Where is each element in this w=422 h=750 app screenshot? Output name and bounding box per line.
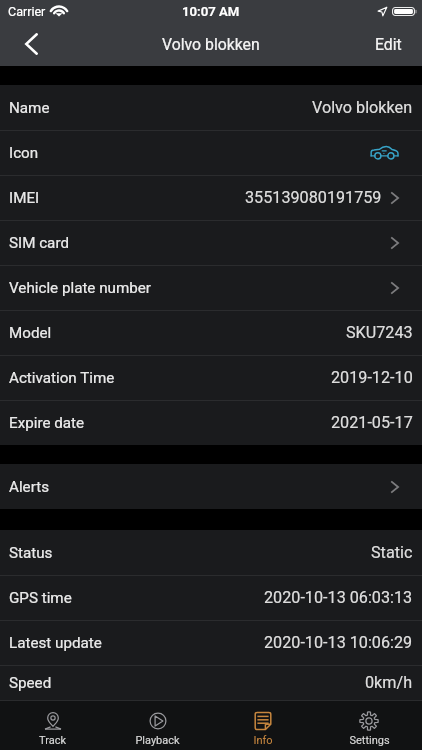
staticText: 2020-10-13 06:03:13 <box>264 588 413 607</box>
staticText: Settings <box>349 734 390 747</box>
button[interactable]: IMEI <box>0 175 422 220</box>
staticText: Info <box>253 734 273 747</box>
button[interactable]: Icon <box>0 130 422 175</box>
staticText: Activation Time <box>9 369 115 387</box>
staticText: Status <box>9 544 53 562</box>
staticText: Latest update <box>9 634 102 652</box>
staticText: Static <box>371 543 413 562</box>
staticText: 0km/h <box>365 673 413 692</box>
button[interactable]: Speed <box>0 665 422 700</box>
staticText: Carrier <box>8 4 46 19</box>
staticText: 10:07 AM <box>182 4 240 19</box>
button[interactable]: Back <box>0 22 62 66</box>
button[interactable]: Model <box>0 310 422 355</box>
staticText: GPS time <box>9 589 72 607</box>
button[interactable]: Playback <box>105 701 210 750</box>
button[interactable]: Expire date <box>0 400 422 445</box>
staticText: Expire date <box>9 414 85 432</box>
button[interactable]: Status <box>0 530 422 575</box>
button[interactable]: SIM card <box>0 220 422 265</box>
staticText: Volvo blokken <box>312 98 413 117</box>
staticText: 2019-12-10 <box>331 368 413 387</box>
staticText: SIM card <box>9 234 69 252</box>
staticText: Icon <box>9 144 39 162</box>
button[interactable]: Alerts <box>0 464 422 509</box>
staticText: Name <box>9 99 50 117</box>
staticText: Model <box>9 324 52 342</box>
button[interactable]: Settings <box>316 701 422 750</box>
button[interactable]: Track <box>0 701 105 750</box>
staticText: Edit <box>375 35 402 54</box>
staticText: Alerts <box>9 478 49 496</box>
staticText: Playback <box>135 734 180 747</box>
staticText: Track <box>39 734 66 747</box>
staticText: Speed <box>9 674 52 692</box>
staticText: IMEI <box>9 189 40 207</box>
staticText: 355139080191759 <box>245 188 382 207</box>
button[interactable]: Latest update <box>0 620 422 665</box>
staticText: 2020-10-13 10:06:29 <box>264 633 413 652</box>
button[interactable]: Activation Time <box>0 355 422 400</box>
button[interactable]: GPS time <box>0 575 422 620</box>
staticText: Vehicle plate number <box>9 279 151 297</box>
button[interactable]: Name <box>0 85 422 130</box>
button[interactable]: Vehicle plate number <box>0 265 422 310</box>
button[interactable]: Info <box>210 701 316 750</box>
button[interactable]: Edit <box>355 22 422 66</box>
staticText: Volvo blokken <box>162 35 260 54</box>
staticText: SKU7243 <box>346 323 413 342</box>
staticText: 2021-05-17 <box>331 413 413 432</box>
